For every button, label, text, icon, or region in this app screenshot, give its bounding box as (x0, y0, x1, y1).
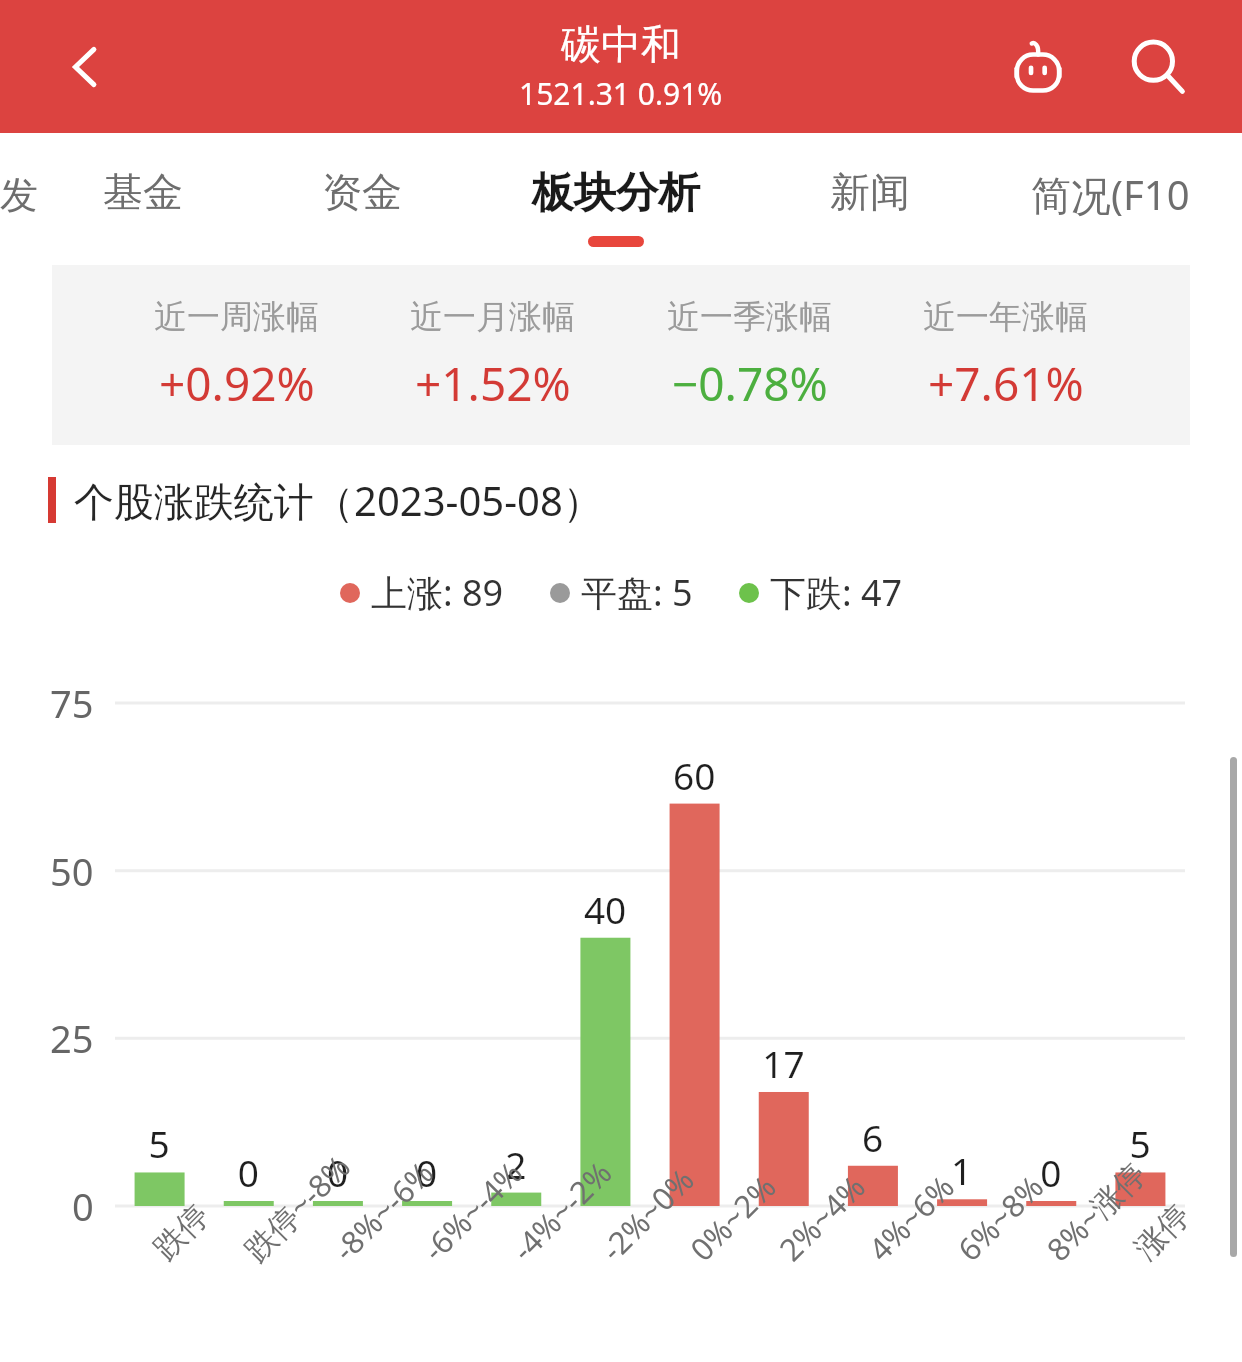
staticText: 平盘: 5 (581, 568, 693, 617)
button[interactable]: 发 (0, 133, 34, 265)
button[interactable]: AI assistant (990, 19, 1086, 115)
staticText: 发 (0, 171, 34, 219)
button[interactable]: 板块分析 (471, 133, 760, 265)
staticText: 上涨: 89 (371, 568, 504, 617)
staticText: −0.78% (672, 352, 828, 415)
staticText: 简况(F10 (1031, 167, 1190, 222)
staticText: 新闻 (830, 167, 910, 217)
staticText: 板块分析 (532, 167, 700, 220)
button[interactable] (0, 629, 1242, 1362)
staticText: +7.61% (928, 352, 1084, 415)
staticText: 资金 (322, 167, 402, 217)
staticText: 近一年涨幅 (923, 296, 1088, 338)
staticText: +1.52% (415, 352, 571, 415)
button[interactable]: 简况(F10 (979, 133, 1242, 265)
button[interactable]: 新闻 (760, 133, 979, 265)
staticText: 近一季涨幅 (667, 296, 832, 338)
staticText: 基金 (103, 167, 183, 217)
staticText: +0.92% (159, 352, 315, 415)
staticText: 近一月涨幅 (410, 296, 575, 338)
button[interactable]: Search (1110, 19, 1206, 115)
button[interactable]: 资金 (252, 133, 471, 265)
staticText: 个股涨跌统计（2023-05-08） (74, 473, 603, 528)
staticText: 1521.31 0.91% (519, 73, 723, 114)
button[interactable]: 基金 (34, 133, 252, 265)
staticText: 碳中和 (561, 19, 681, 69)
staticText: 近一周涨幅 (154, 296, 319, 338)
staticText: 下跌: 47 (770, 568, 903, 617)
button[interactable]: Back (48, 29, 124, 105)
